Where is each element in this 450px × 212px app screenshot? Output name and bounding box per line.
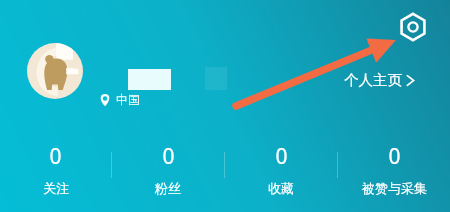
staticText: 0	[162, 142, 175, 171]
staticText: 被赞与采集	[362, 180, 427, 196]
button[interactable]: 0	[338, 134, 450, 212]
button[interactable]: 0	[0, 134, 111, 212]
staticText: 0	[49, 142, 62, 171]
button[interactable]: Settings	[391, 5, 435, 49]
staticText: 收藏	[268, 180, 294, 196]
staticText: 个人主页	[344, 71, 402, 89]
button[interactable]: 0	[225, 134, 337, 212]
staticText: 0	[275, 142, 288, 171]
staticText: 中国	[116, 92, 140, 107]
staticText: 0	[388, 142, 401, 171]
button[interactable]: 个人主页	[340, 68, 419, 92]
button[interactable]: Profile avatar	[27, 43, 83, 99]
staticText: 粉丝	[155, 180, 181, 196]
staticText: 关注	[43, 180, 69, 196]
button[interactable]: 0	[112, 134, 224, 212]
